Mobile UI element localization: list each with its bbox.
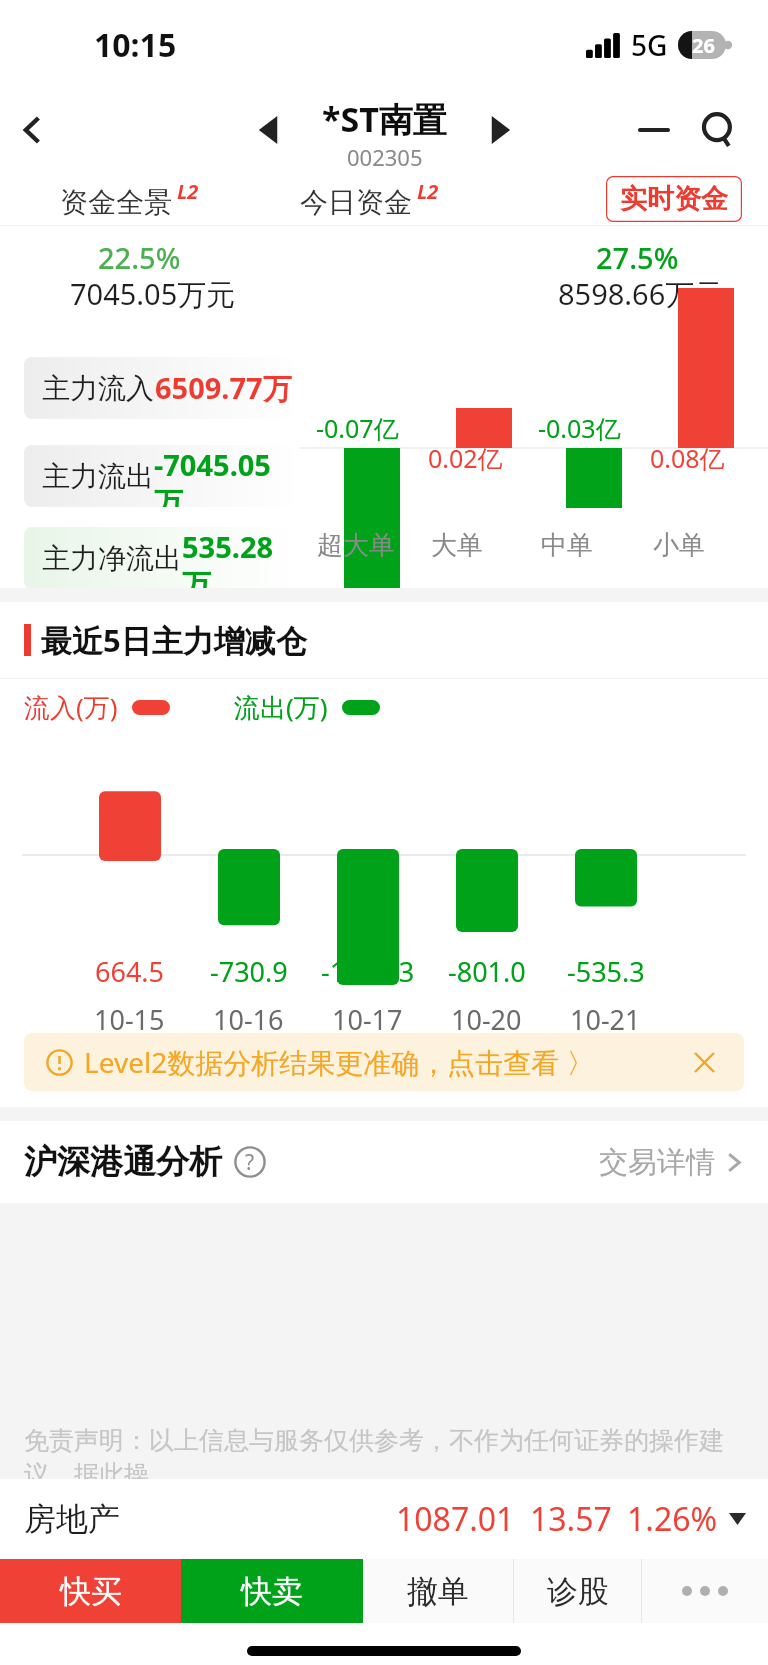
staticText: 664.5 <box>95 953 165 990</box>
staticText: 房地产 <box>24 1499 120 1539</box>
staticText: 超大单 <box>317 529 395 562</box>
staticText: 最近5日主力增减仓 <box>41 619 307 661</box>
staticText: 0.02亿 <box>428 441 503 475</box>
button[interactable]: 撤单 <box>363 1559 513 1623</box>
staticText: 10-20 <box>451 1001 522 1038</box>
staticText: L2 <box>177 178 199 205</box>
button[interactable]: 诊股 <box>514 1559 641 1623</box>
button[interactable]: 实时资金 <box>620 182 728 216</box>
staticText: 0.08亿 <box>650 441 725 475</box>
staticText: -0.07亿 <box>316 411 399 445</box>
staticText: 实时资金 <box>620 182 728 216</box>
button[interactable]: 沪深港通分析 <box>24 1121 744 1203</box>
button[interactable]: Previous stock <box>240 102 296 158</box>
staticText: L2 <box>417 178 439 205</box>
staticText: -730.9 <box>210 953 288 990</box>
staticText: 10-15 <box>94 1001 165 1038</box>
button[interactable]: 房地产 <box>24 1479 746 1559</box>
button[interactable]: 主力净流出 <box>24 527 302 589</box>
staticText: 26 <box>692 32 715 59</box>
button[interactable]: Level2数据分析结果更准确，点击查看 〉 <box>24 1033 744 1091</box>
staticText: ? <box>245 1148 255 1177</box>
staticText: 沪深港通分析 <box>24 1141 222 1183</box>
staticText: 6509.77万 <box>155 368 292 408</box>
staticText: -1353.3 <box>321 953 415 990</box>
staticText: 5G <box>631 26 668 64</box>
button[interactable]: More options <box>642 1559 768 1623</box>
button[interactable]: Back <box>0 97 66 163</box>
button[interactable]: Next stock <box>472 102 528 158</box>
button[interactable]: Search <box>686 98 750 162</box>
staticText: 8598.66万元 <box>558 274 724 314</box>
staticText: 13.57 <box>530 1497 612 1541</box>
button[interactable]: 资金全景 <box>60 178 199 213</box>
staticText: 中单 <box>541 529 593 562</box>
staticText: 27.5% <box>596 238 679 277</box>
button[interactable]: 今日资金 <box>300 178 439 213</box>
staticText: 1087.01 <box>396 1497 515 1541</box>
button[interactable]: 主力流入 <box>24 357 302 419</box>
staticText: 资金全景 <box>60 185 172 220</box>
staticText: -801.0 <box>448 953 526 990</box>
staticText: 诊股 <box>547 1572 609 1611</box>
staticText: 22.5% <box>98 238 181 277</box>
staticText: 1.26% <box>627 1497 718 1541</box>
staticText: 今日资金 <box>300 185 412 220</box>
staticText: *ST南置 <box>322 96 447 142</box>
staticText: 大单 <box>431 529 483 562</box>
staticText: 小单 <box>653 529 705 562</box>
staticText: 10:15 <box>94 23 177 67</box>
staticText: 撤单 <box>407 1572 469 1611</box>
staticText: 002305 <box>347 142 423 166</box>
button[interactable]: 快买 <box>0 1559 181 1623</box>
staticText: -535.3 <box>567 953 645 990</box>
staticText: 10-21 <box>570 1001 641 1038</box>
staticText: 10-17 <box>332 1001 403 1038</box>
staticText: 交易详情 <box>599 1144 715 1181</box>
button[interactable]: Close <box>686 1044 722 1080</box>
staticText: 主力流出 <box>42 459 154 494</box>
staticText: 7045.05万元 <box>70 274 236 314</box>
staticText: 主力净流出 <box>42 541 182 576</box>
staticText: 10-16 <box>213 1001 284 1038</box>
staticText: 流入(万) <box>24 689 118 725</box>
button[interactable]: 主力流出 <box>24 445 302 507</box>
staticText: 主力流入 <box>42 371 154 406</box>
button[interactable]: 快卖 <box>181 1559 363 1623</box>
button[interactable]: Minimize <box>622 98 686 162</box>
staticText: 免责声明：以上信息与服务仅供参考，不作为任何证券的操作建议，据此操 <box>24 1425 768 1491</box>
staticText: 快卖 <box>241 1572 303 1611</box>
staticText: 快买 <box>60 1572 122 1611</box>
staticText: -0.03亿 <box>538 411 621 445</box>
staticText: 535.28万 <box>182 527 292 589</box>
staticText: Level2数据分析结果更准确，点击查看 〉 <box>84 1043 595 1081</box>
staticText: 流出(万) <box>234 689 328 725</box>
staticText: -7045.05万 <box>154 445 292 507</box>
